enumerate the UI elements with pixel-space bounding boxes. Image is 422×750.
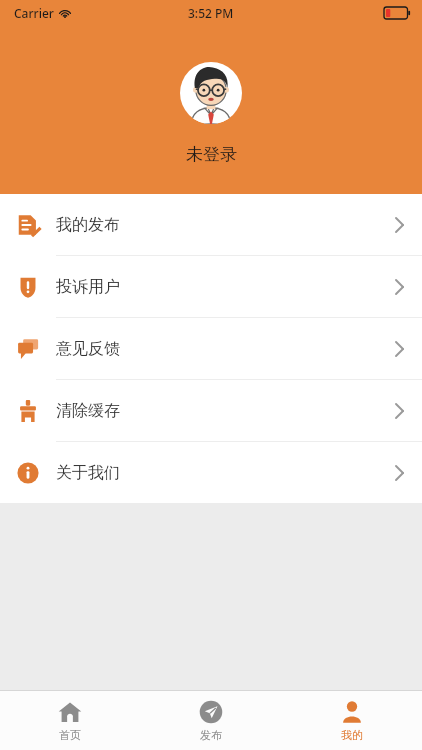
staticText: 关于我们 (56, 463, 120, 483)
staticText: 意见反馈 (56, 339, 120, 359)
staticText: 我的 (341, 728, 363, 742)
staticText: Carrier (14, 5, 54, 21)
button[interactable]: 清除缓存 (0, 380, 422, 442)
button[interactable]: 发布 (140, 691, 281, 750)
staticText: 投诉用户 (56, 277, 120, 297)
staticText: 清除缓存 (56, 401, 120, 421)
staticText: 未登录 (186, 144, 237, 165)
staticText: 首页 (59, 728, 81, 742)
button[interactable]: Avatar (180, 62, 242, 124)
button[interactable]: 投诉用户 (0, 256, 422, 318)
button[interactable]: 意见反馈 (0, 318, 422, 380)
button[interactable]: 我的 (281, 691, 422, 750)
staticText: 发布 (200, 728, 222, 742)
button[interactable]: 首页 (0, 691, 140, 750)
staticText: 我的发布 (56, 215, 120, 235)
button[interactable]: 我的发布 (0, 194, 422, 256)
staticText: 3:52 PM (188, 5, 234, 21)
button[interactable]: 关于我们 (0, 442, 422, 503)
